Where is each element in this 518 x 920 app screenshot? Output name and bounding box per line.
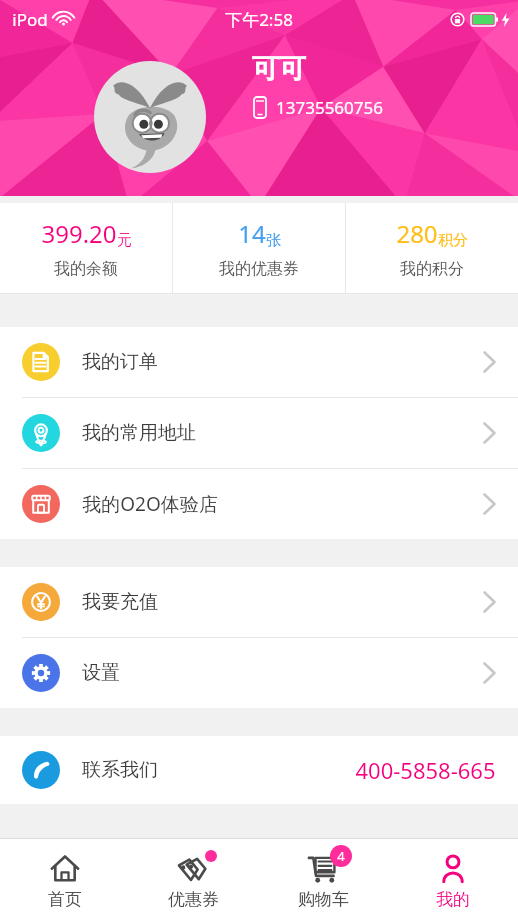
button[interactable]: 399.20 [0,203,172,293]
staticText: 13735560756 [276,96,383,119]
staticText: 元 [117,231,132,250]
button[interactable]: 设置 [0,638,518,708]
staticText: 我的O2O体验店 [82,491,218,517]
staticText: 首页 [48,889,82,910]
staticText: 张 [266,231,281,250]
staticText: 优惠券 [168,889,219,910]
button[interactable]: 优惠券 [129,839,258,920]
staticText: 我的余额 [54,259,118,279]
staticText: 我的优惠券 [219,259,299,279]
staticText: 14 [238,217,266,250]
button[interactable]: Profile avatar [94,61,206,173]
staticText: 280 [396,217,438,250]
button[interactable]: 我的 [388,839,518,920]
staticText: 我的常用地址 [82,421,196,445]
button[interactable]: 14 [173,203,345,293]
button[interactable]: 首页 [0,839,129,920]
staticText: 我的订单 [82,350,158,374]
staticText: 我要充值 [82,590,158,614]
button[interactable]: 我的常用地址 [0,398,518,468]
button[interactable]: 我要充值 [0,567,518,637]
staticText: 积分 [438,231,468,250]
staticText: 购物车 [298,889,349,910]
staticText: 4 [337,847,345,865]
button[interactable]: 4 [258,839,388,920]
staticText: 我的 [436,889,470,910]
staticText: 我的积分 [400,259,464,279]
staticText: 可可 [252,52,306,86]
button[interactable]: 联系我们 [0,736,518,804]
button[interactable]: 我的订单 [0,327,518,397]
staticText: 下午2:58 [225,8,293,31]
staticText: iPod [12,8,48,31]
staticText: 设置 [82,661,120,685]
staticText: 399.20 [41,217,117,250]
staticText: 联系我们 [82,758,158,782]
button[interactable]: 280 [346,203,518,293]
button[interactable]: 我的O2O体验店 [0,469,518,539]
staticText: 400-5858-665 [355,755,496,785]
